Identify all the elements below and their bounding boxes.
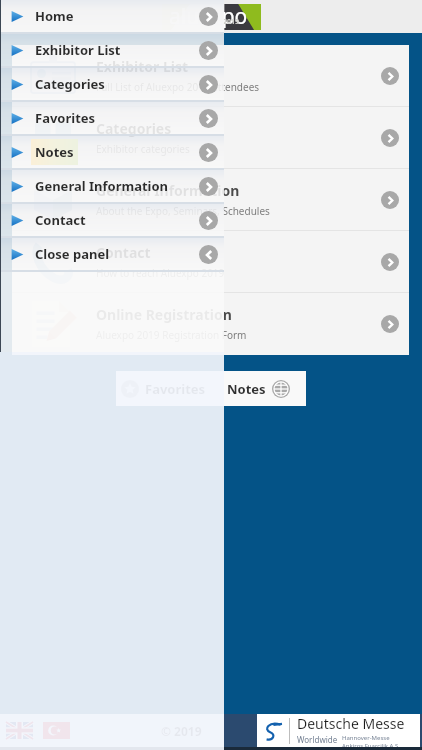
button[interactable]: Notes — [211, 371, 306, 406]
staticText: Contact — [96, 243, 151, 262]
other: Open — [381, 67, 399, 85]
staticText: Categories — [96, 119, 172, 138]
button[interactable]: Favorites — [0, 102, 224, 134]
staticText: © 2019 — [161, 723, 202, 739]
staticText: Contact — [35, 211, 86, 229]
button[interactable]: Contact — [12, 231, 409, 292]
staticText: How to reach Aluexpo 2019 — [96, 266, 225, 280]
other: Open — [381, 191, 399, 209]
staticText: Aluexpo 2019 Registration Form — [96, 328, 247, 342]
other: Open — [381, 253, 399, 271]
other: Back — [199, 245, 218, 264]
other: Open — [381, 315, 399, 333]
other: Open — [199, 7, 218, 26]
button[interactable]: Home — [0, 0, 224, 32]
staticText: Exhibitor categories — [96, 142, 190, 156]
staticText: Exhibitor List — [96, 57, 189, 76]
staticText: Online Registration — [96, 305, 232, 324]
other: Open — [381, 129, 399, 147]
button[interactable]: Exhibitor List — [0, 34, 224, 66]
staticText: Hannover-Messe — [342, 734, 390, 742]
other: Open — [199, 75, 218, 94]
staticText: About the Expo, Seminars, Schedules — [96, 204, 270, 218]
button[interactable]: Online Registration — [12, 293, 409, 354]
staticText: Close panel — [35, 245, 110, 263]
button[interactable]: Exhibitor List — [12, 45, 409, 106]
button[interactable]: Categories — [12, 107, 409, 168]
staticText: Exhibitor List — [35, 41, 121, 59]
staticText: aluexpo — [169, 2, 248, 28]
button[interactable]: General Information — [12, 169, 409, 230]
staticText: Ankiros Fuarcilik A.Ş. — [342, 742, 400, 747]
button[interactable]: Favorites — [116, 371, 211, 406]
staticText: Deutsche Messe — [297, 714, 405, 733]
button[interactable]: Close panel — [0, 238, 224, 270]
staticText: Worldwide — [297, 734, 338, 745]
staticText: Categories — [35, 75, 105, 93]
button[interactable]: Contact — [0, 204, 224, 236]
staticText: General Information — [96, 181, 240, 200]
staticText: 2019 — [223, 17, 240, 27]
other: Open — [199, 211, 218, 230]
staticText: Favorites — [145, 380, 206, 398]
other: Open — [199, 41, 218, 60]
staticText: Home — [35, 7, 74, 25]
staticText: Full List of Aluexpo 2019 attendees — [96, 80, 260, 94]
other: Open — [199, 143, 218, 162]
staticText: Notes — [227, 380, 266, 398]
staticText: Favorites — [35, 109, 96, 127]
staticText: Notes — [35, 143, 74, 161]
button[interactable]: Categories — [0, 68, 224, 100]
button[interactable]: Notes — [0, 136, 224, 168]
other: Open — [199, 177, 218, 196]
other: Open — [199, 109, 218, 128]
staticText: General Information — [35, 177, 169, 195]
button[interactable]: General Information — [0, 170, 224, 202]
